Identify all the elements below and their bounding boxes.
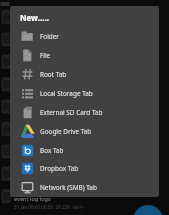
staticText: Google Drive Tab [40, 127, 92, 136]
button[interactable]: External SD Card Tab [10, 103, 159, 122]
staticText: 31 Jan 09:00:00:00 29.22K rw-r-- [14, 204, 85, 210]
button[interactable]: Root Tab [10, 65, 159, 84]
staticText: External SD Card Tab [40, 108, 103, 117]
staticText: File [40, 51, 51, 60]
staticText: event log logs [14, 195, 51, 203]
button[interactable]: Folder [10, 27, 159, 46]
staticText: Root Tab [40, 70, 67, 79]
button[interactable]: Dropbox Tab [10, 159, 159, 178]
staticText: New..... [20, 12, 49, 23]
staticText: Folder [40, 32, 60, 41]
button[interactable]: Network (SMB) Tab [10, 178, 159, 197]
button[interactable]: Box Tab [10, 141, 159, 160]
button[interactable]: Google Drive Tab [10, 122, 159, 141]
staticText: Local Storage Tab [40, 89, 93, 98]
staticText: Dropbox Tab [40, 164, 79, 173]
staticText: Network (SMB) Tab [40, 183, 97, 192]
staticText: Box Tab [40, 146, 64, 155]
button[interactable]: Local Storage Tab [10, 84, 159, 103]
button[interactable]: File [10, 46, 159, 65]
